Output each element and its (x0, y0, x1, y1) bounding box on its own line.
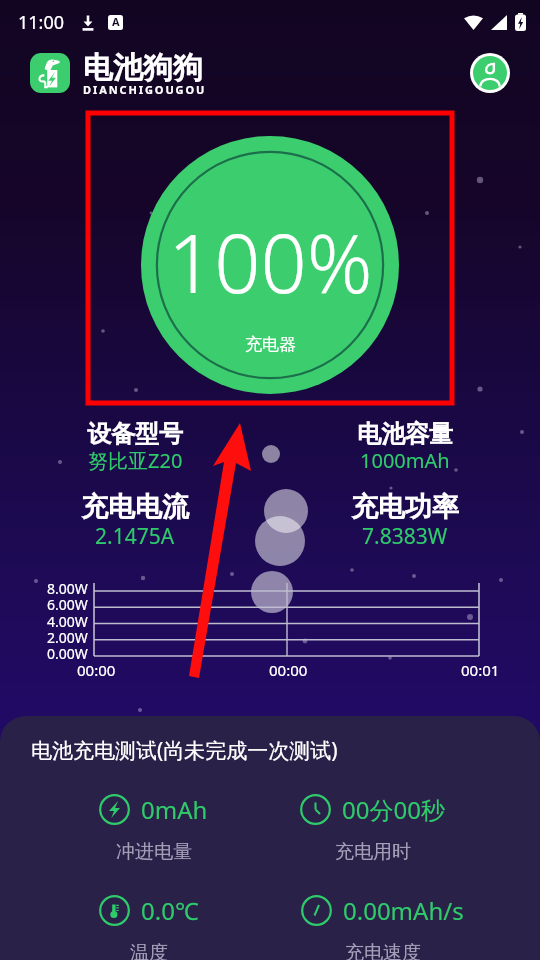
button[interactable]: 充电功率 (270, 490, 540, 553)
staticText: DIANCHIGOUGOU (83, 82, 207, 97)
staticText: 8.00W (47, 579, 88, 598)
button[interactable]: 0.0℃ (99, 894, 199, 960)
staticText: 充电器 (245, 334, 296, 355)
staticText: 0.00W (47, 644, 88, 663)
staticText: 0mAh (141, 793, 208, 826)
staticText: 充电功率 (351, 490, 459, 524)
staticText: 11:00 (18, 10, 65, 35)
staticText: 冲进电量 (116, 840, 192, 864)
button[interactable]: 0.00mAh/s (301, 894, 464, 960)
staticText: 充电用时 (335, 840, 411, 864)
button[interactable]: 电池容量 (270, 419, 540, 476)
staticText: 00:01 (461, 660, 500, 680)
staticText: 充电速度 (345, 941, 421, 960)
button[interactable]: 充电电流 (0, 490, 270, 553)
staticText: 2.00W (47, 628, 88, 647)
staticText: 电池充电测试(尚未完成一次测试) (31, 736, 338, 765)
staticText: 充电电流 (81, 490, 189, 524)
button[interactable]: Profile (473, 56, 507, 90)
staticText: 00分00秒 (342, 793, 445, 826)
staticText: 2.1475A (95, 522, 175, 551)
staticText: 电池容量 (357, 419, 453, 449)
button[interactable]: 设备型号 (0, 419, 270, 476)
staticText: 0.0℃ (141, 894, 199, 927)
staticText: 0.00mAh/s (343, 894, 464, 927)
staticText: 温度 (130, 941, 168, 960)
staticText: 电池狗狗 (83, 49, 203, 87)
staticText: 7.8383W (362, 522, 448, 551)
staticText: 00:00 (269, 660, 308, 680)
staticText: A (112, 15, 120, 29)
staticText: 1000mAh (360, 447, 450, 474)
staticText: 100% (168, 206, 373, 316)
staticText: 00:00 (77, 660, 116, 680)
button[interactable]: 0mAh (99, 793, 208, 864)
staticText: 6.00W (47, 595, 88, 614)
staticText: 努比亚Z20 (88, 447, 183, 474)
button[interactable]: 00分00秒 (300, 793, 445, 864)
button[interactable]: App logo (30, 53, 70, 93)
staticText: 4.00W (47, 612, 88, 631)
staticText: 设备型号 (87, 419, 183, 449)
